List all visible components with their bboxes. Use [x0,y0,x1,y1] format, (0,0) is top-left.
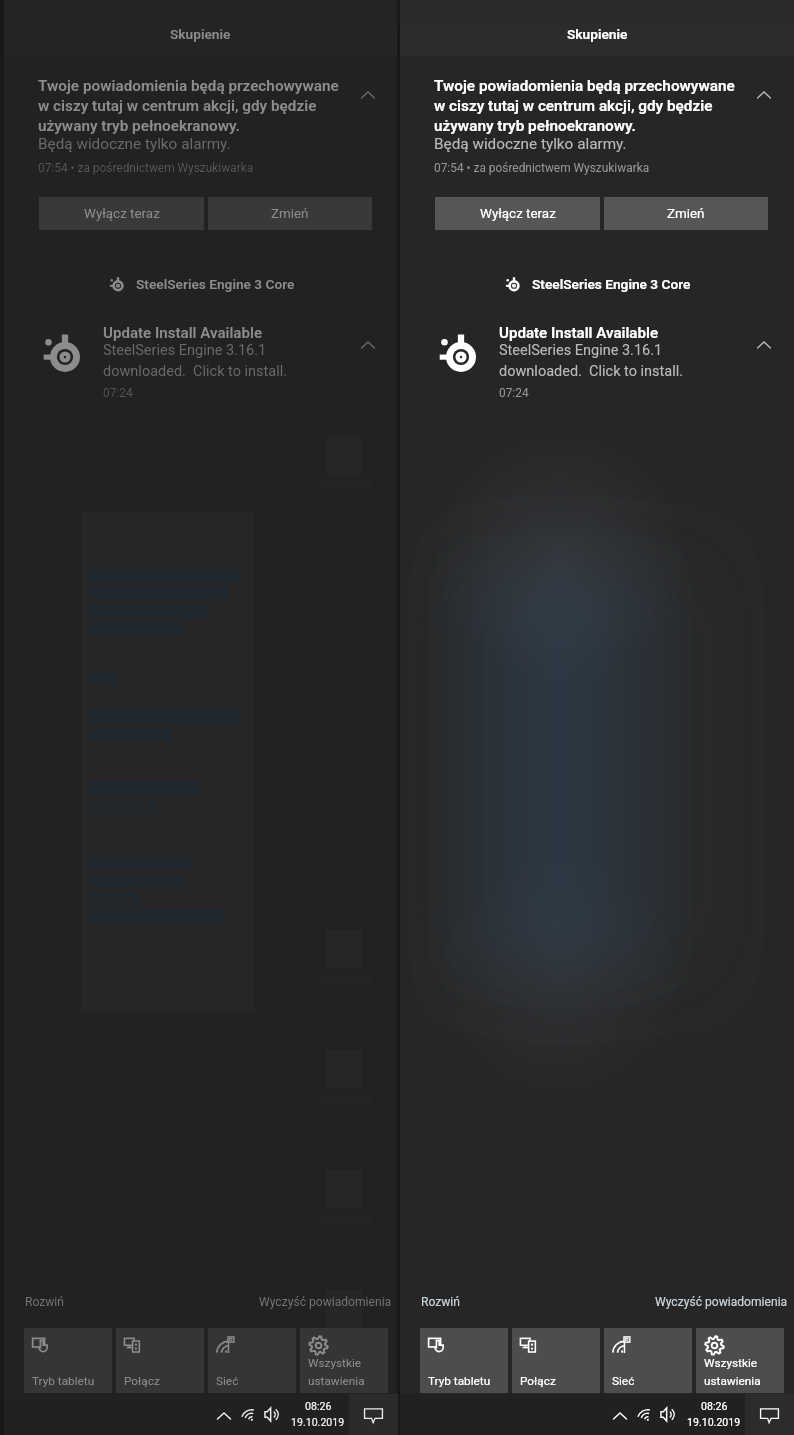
staticText: Zmień [271,206,309,222]
staticText: Update Install Available [499,324,659,342]
button[interactable]: Wszystkie ustawienia [696,1328,784,1393]
staticText: Skupienie [567,26,628,42]
staticText: Wyłącz teraz [84,206,160,222]
button[interactable]: Zwiń powiadomienie [349,326,387,364]
button[interactable]: Zwiń powiadomienie [745,326,783,364]
staticText: Połącz [520,1374,556,1388]
button[interactable]: Pokaż ukryte ikony [606,1394,634,1435]
staticText: Będą widoczne tylko alarmy. [38,135,231,153]
staticText: 07:24 [499,386,529,400]
staticText: 19.10.2019 [291,1416,345,1428]
staticText: SteelSeries Engine 3 Core [532,276,691,292]
button[interactable]: Tryb tabletu [420,1328,508,1393]
button[interactable]: Pokaż ukryte ikony [210,1394,238,1435]
button[interactable]: Tryb tabletu [24,1328,112,1393]
staticText: Rozwiń [421,1295,460,1309]
staticText: Tryb tabletu [428,1374,491,1388]
button[interactable]: Rozwiń [20,1290,59,1304]
staticText: 07:24 [103,386,133,400]
staticText: 08:26 [305,1400,332,1412]
button[interactable]: Wyczyść powiadomienia [650,1290,783,1304]
staticText: Wyczyść powiadomienia [259,1295,392,1309]
staticText: Będą widoczne tylko alarmy. [434,135,627,153]
button[interactable]: Wyłącz teraz [435,197,600,230]
button[interactable]: Centrum akcji [349,1394,398,1435]
staticText: Wszystkie ustawienia [704,1356,761,1388]
button[interactable]: Wyczyść powiadomienia [254,1290,387,1304]
staticText: 19.10.2019 [687,1416,741,1428]
button[interactable]: Połącz [116,1328,204,1393]
button[interactable]: Sieć [238,1394,264,1435]
staticText: Wszystkie ustawienia [308,1356,365,1388]
staticText: Wyczyść powiadomienia [655,1295,788,1309]
button[interactable]: Połącz [512,1328,600,1393]
staticText: SteelSeries Engine 3 Core [136,276,295,292]
staticText: Sieć [612,1374,635,1388]
staticText: SteelSeries Engine 3.16.1 downloaded. Cl… [499,342,684,379]
staticText: 07:54 • za pośrednictwem Wyszukiwarka [434,161,650,175]
staticText: Sieć [216,1374,239,1388]
staticText: Twoje powiadomienia będą przechowywane w… [38,77,339,135]
button[interactable]: Zwiń powiadomienie [745,76,783,114]
button[interactable]: Zmień [208,197,372,230]
button[interactable]: Zwiń powiadomienie [349,76,387,114]
button[interactable]: Sieć [208,1328,296,1393]
button[interactable]: Rozwiń [416,1290,455,1304]
staticText: Rozwiń [25,1295,64,1309]
button[interactable]: 08:26 [683,1394,745,1435]
staticText: Wyłącz teraz [480,206,556,222]
button[interactable]: Centrum akcji [745,1394,794,1435]
button[interactable]: Wyłącz teraz [39,197,204,230]
staticText: SteelSeries Engine 3.16.1 downloaded. Cl… [103,342,288,379]
button[interactable]: Głośność [259,1394,287,1435]
button[interactable]: Zmień [604,197,768,230]
staticText: Zmień [667,206,705,222]
button[interactable]: Głośność [655,1394,683,1435]
staticText: Update Install Available [103,324,263,342]
staticText: Połącz [124,1374,160,1388]
button[interactable]: Wszystkie ustawienia [300,1328,388,1393]
button[interactable]: Sieć [604,1328,692,1393]
staticText: 08:26 [701,1400,728,1412]
button[interactable]: Sieć [634,1394,660,1435]
staticText: 07:54 • za pośrednictwem Wyszukiwarka [38,161,254,175]
staticText: Skupienie [170,26,231,42]
staticText: Tryb tabletu [32,1374,95,1388]
staticText: Twoje powiadomienia będą przechowywane w… [434,77,735,135]
button[interactable]: 08:26 [287,1394,349,1435]
